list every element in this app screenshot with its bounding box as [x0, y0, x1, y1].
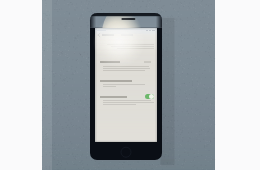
button[interactable]	[95, 78, 157, 83]
button[interactable]: Back	[95, 32, 157, 37]
other: Back	[97, 33, 101, 37]
button[interactable]	[95, 59, 157, 64]
button[interactable]: Toggle setting	[145, 94, 154, 99]
button[interactable]: Toggle setting	[95, 94, 157, 99]
